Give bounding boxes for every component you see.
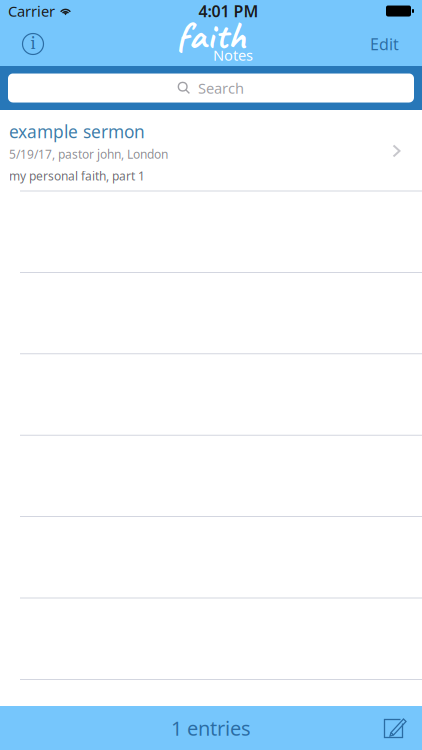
button[interactable]: Compose (374, 706, 418, 750)
staticText: 1 entries (171, 715, 251, 741)
staticText: Search (198, 78, 244, 98)
staticText: Carrier (8, 1, 55, 21)
staticText: 5/19/17, pastor john, London (9, 146, 168, 162)
button[interactable]: Search (8, 73, 414, 102)
staticText: Notes (213, 45, 253, 65)
button[interactable]: Info (11, 22, 55, 66)
button[interactable]: example sermon (0, 110, 422, 191)
staticText: i (30, 33, 35, 55)
button[interactable]: Edit (363, 22, 416, 66)
staticText: my personal faith, part 1 (9, 168, 145, 184)
staticText: Edit (370, 33, 399, 55)
staticText: 4:01 PM (198, 0, 258, 22)
staticText: example sermon (9, 120, 145, 143)
staticText: faith (176, 10, 246, 60)
